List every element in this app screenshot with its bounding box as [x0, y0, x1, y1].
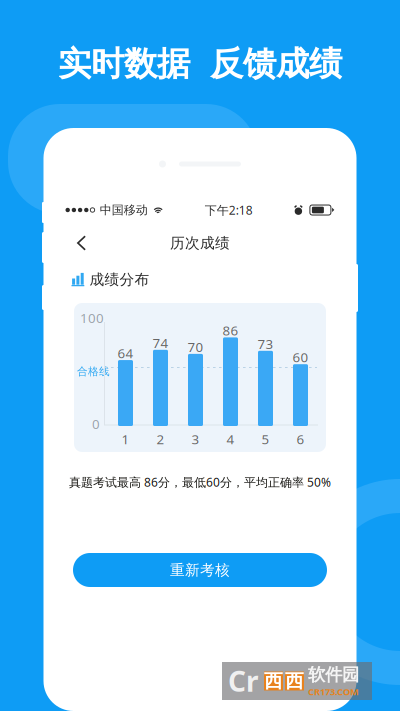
staticText: 1: [121, 430, 129, 448]
staticText: 2: [156, 430, 164, 448]
staticText: 西: [264, 669, 283, 692]
staticText: CR173.COM: [308, 685, 359, 698]
staticText: 4: [226, 430, 234, 448]
staticText: 100: [80, 309, 104, 327]
staticText: 下午2:18: [205, 202, 253, 218]
staticText: 实时数据 反馈成绩: [58, 43, 342, 84]
staticText: 86: [222, 322, 238, 339]
staticText: 重新考核: [170, 561, 230, 579]
staticText: 6: [296, 430, 304, 448]
staticText: 历次成绩: [170, 234, 230, 252]
button[interactable]: 返回: [61, 230, 101, 256]
staticText: 成绩分布: [89, 270, 149, 288]
staticText: 64: [117, 344, 133, 362]
button[interactable]: 重新考核: [73, 553, 327, 587]
staticText: 5: [261, 430, 269, 448]
staticText: 0: [92, 415, 100, 433]
staticText: 70: [187, 338, 203, 356]
staticText: 软件园: [308, 664, 359, 685]
staticText: 74: [152, 334, 168, 352]
staticText: 合格线: [77, 365, 110, 378]
staticText: 73: [257, 335, 273, 353]
staticText: 3: [191, 430, 199, 448]
staticText: 西: [285, 669, 304, 692]
staticText: Cr: [228, 662, 259, 700]
staticText: 真题考试最高 86分，最低60分，平均正确率 50%: [69, 474, 331, 490]
staticText: 60: [292, 348, 308, 366]
staticText: 中国移动: [100, 203, 148, 217]
